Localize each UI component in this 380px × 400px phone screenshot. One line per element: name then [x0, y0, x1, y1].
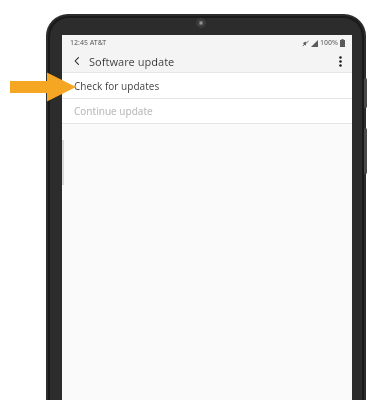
staticText: Continue update — [74, 104, 153, 118]
staticText: 12:45 AT&T — [70, 38, 107, 48]
button[interactable]: Back — [69, 53, 85, 69]
staticText: 100% — [320, 38, 338, 48]
button[interactable]: More options — [332, 53, 348, 69]
button[interactable]: Continue update — [62, 99, 352, 123]
staticText: Software update — [89, 54, 175, 69]
staticText: Check for updates — [74, 79, 160, 93]
button[interactable]: Check for updates — [62, 73, 352, 98]
other: Callout arrow pointing to Check for upda… — [10, 72, 76, 102]
